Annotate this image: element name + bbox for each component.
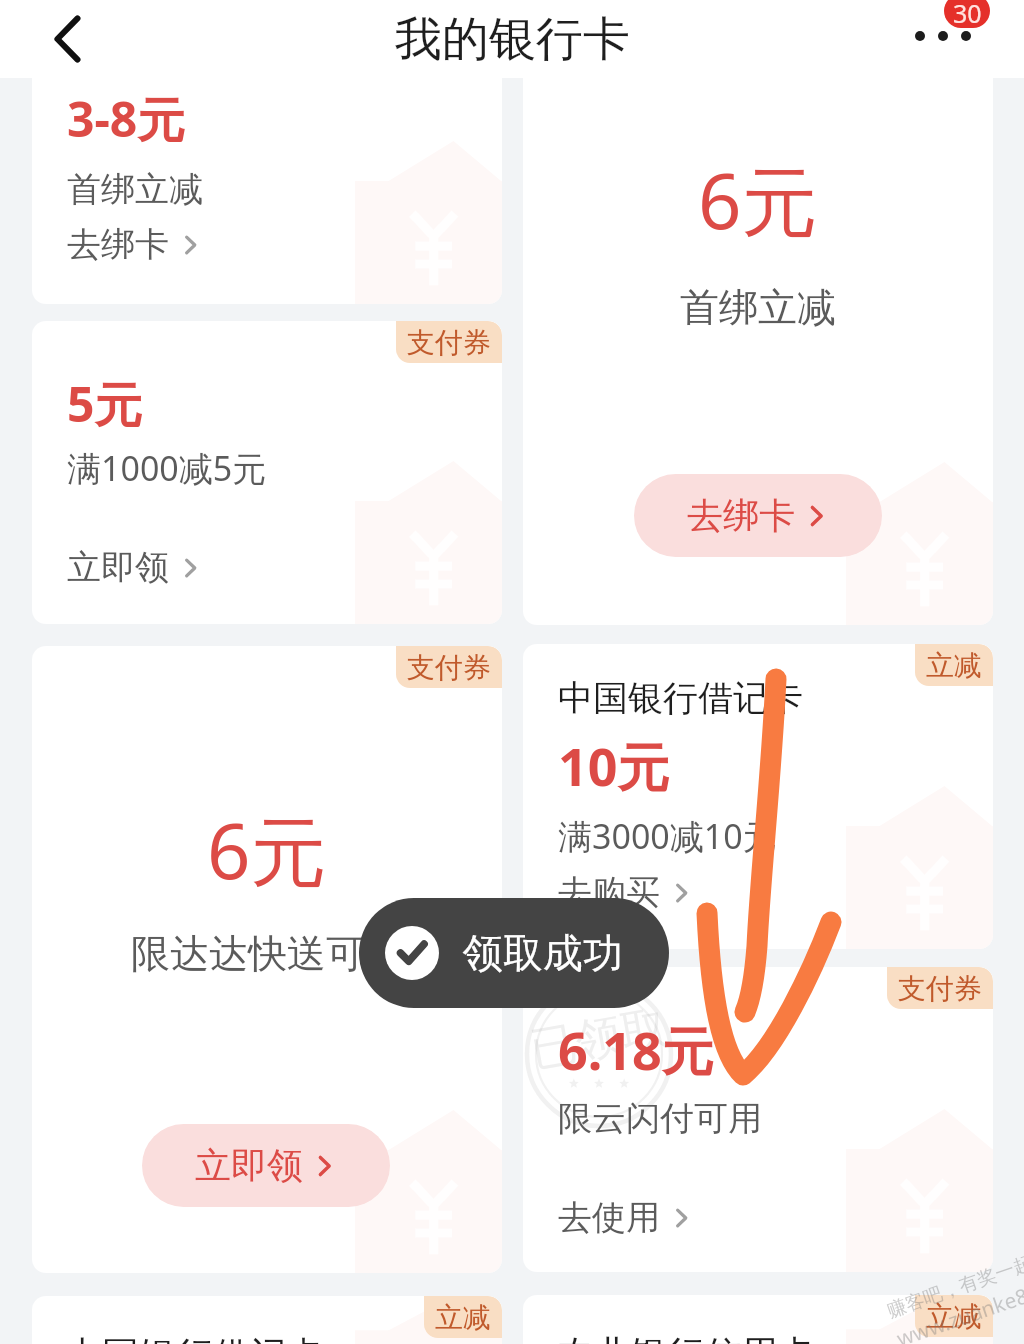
button[interactable]: 立即领 <box>67 546 202 589</box>
button[interactable]: 去绑卡 <box>67 223 202 266</box>
staticText: 支付券 <box>898 971 982 1006</box>
staticText: 6.18元 <box>558 1014 714 1085</box>
staticText: 我的银行卡 <box>395 10 630 69</box>
staticText: 中国银行借记卡 <box>558 676 803 720</box>
staticText: 首绑立减 <box>67 168 203 211</box>
staticText: 3-8元 <box>67 86 186 152</box>
staticText: www.zuanke8.com <box>893 1265 1024 1344</box>
button[interactable]: More options <box>915 26 971 46</box>
button[interactable]: 支付券 <box>523 967 993 1272</box>
button[interactable]: 立减 <box>523 1295 993 1344</box>
staticText: 满1000减5元 <box>67 445 267 491</box>
staticText: 5元 <box>67 371 143 437</box>
staticText: 去绑卡 <box>687 493 795 538</box>
button[interactable]: 去购买 <box>558 871 693 914</box>
button[interactable]: 立减 <box>523 644 993 949</box>
staticText: 立减 <box>926 648 982 683</box>
button[interactable]: Back <box>35 7 99 71</box>
staticText: 30 <box>953 0 982 28</box>
button[interactable]: 6元 <box>523 0 993 625</box>
staticText: 6元 <box>207 798 327 902</box>
staticText: 满3000减10元 <box>558 813 777 859</box>
button[interactable]: 立即领 <box>142 1124 390 1207</box>
staticText: 立减 <box>435 1300 491 1335</box>
staticText: 立即领 <box>195 1143 303 1188</box>
staticText: 去绑卡 <box>67 223 169 266</box>
staticText: 中国银行借记卡 <box>65 1332 324 1344</box>
button[interactable]: 支付券 <box>32 321 502 624</box>
staticText: 农业银行信用卡 <box>556 1331 815 1344</box>
staticText: 已领取 <box>526 998 672 1080</box>
staticText: 立即领 <box>67 546 169 589</box>
staticText: 支付券 <box>407 325 491 360</box>
staticText: 限云闪付可用 <box>558 1097 762 1140</box>
staticText: 10元 <box>558 730 670 801</box>
staticText: 立减 <box>926 1299 982 1334</box>
staticText: 去使用 <box>558 1196 660 1239</box>
staticText: 6元 <box>698 148 818 252</box>
button[interactable]: 3-8元 <box>32 0 502 304</box>
staticText: 首绑立减 <box>680 283 836 332</box>
staticText: 支付券 <box>407 650 491 685</box>
button[interactable]: 去绑卡 <box>634 474 882 557</box>
button[interactable]: 支付券 <box>32 646 502 1273</box>
button[interactable]: 立减 <box>32 1296 502 1344</box>
staticText: 限达达快送可用 <box>131 929 404 978</box>
button[interactable]: 去使用 <box>558 1196 693 1239</box>
staticText: 领取成功 <box>463 928 623 978</box>
staticText: 去购买 <box>558 871 660 914</box>
staticText: 赚客吧，有奖一起赚！ <box>884 1239 1024 1323</box>
